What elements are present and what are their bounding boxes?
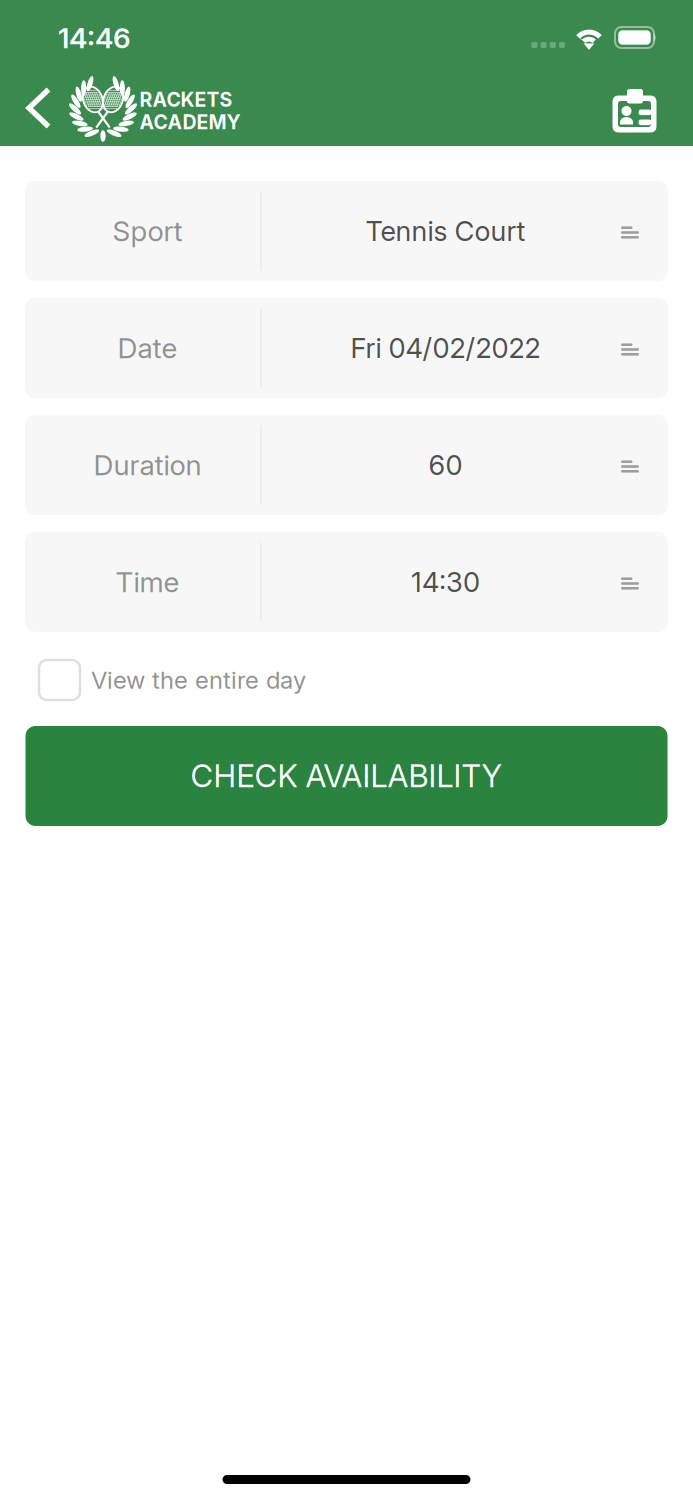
staticText: Date (117, 331, 177, 365)
button[interactable]: Member card (612, 85, 658, 131)
staticText: CHECK AVAILABILITY (190, 757, 502, 795)
button[interactable]: CHECK AVAILABILITY (25, 726, 667, 826)
staticText: Sport (112, 214, 182, 248)
staticText: 14:46 (58, 21, 131, 55)
staticText: 14:30 (411, 565, 480, 599)
staticText: Fri 04/02/2022 (350, 331, 540, 365)
staticText: Tennis Court (365, 214, 525, 248)
staticText: 60 (428, 448, 462, 482)
button[interactable]: Sport (25, 181, 668, 281)
button[interactable]: View the entire day (0, 660, 693, 700)
staticText: Time (115, 565, 179, 599)
staticText: Duration (93, 448, 201, 482)
staticText: RACKETS (139, 88, 232, 111)
staticText: ACADEMY (139, 110, 240, 134)
button[interactable]: Time (25, 532, 668, 632)
button[interactable]: Back (26, 86, 51, 129)
staticText: View the entire day (91, 665, 306, 694)
button[interactable]: Date (25, 298, 668, 398)
button[interactable]: Duration (25, 415, 668, 515)
